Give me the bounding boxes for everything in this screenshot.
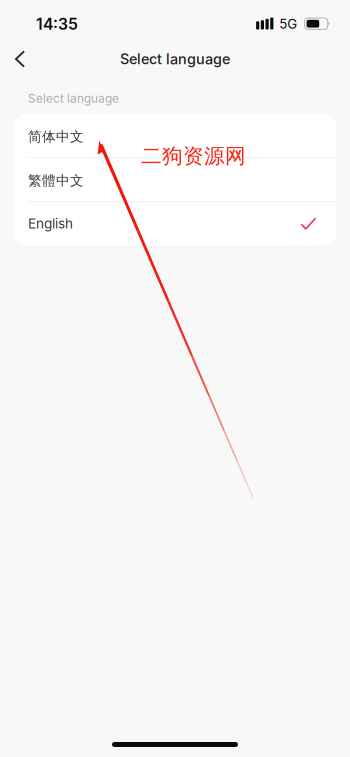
button[interactable]: 简体中文	[14, 114, 336, 157]
staticText: 5G	[279, 16, 297, 32]
button[interactable]: 繁體中文	[14, 158, 336, 201]
staticText: 二狗资源网	[141, 143, 246, 169]
staticText: English	[28, 215, 73, 232]
staticText: 简体中文	[28, 128, 84, 145]
staticText: 14:35	[36, 14, 78, 33]
button[interactable]: English	[14, 202, 336, 245]
staticText: 繁體中文	[28, 172, 84, 189]
staticText: Select language	[120, 50, 230, 68]
button[interactable]: Back	[0, 42, 40, 76]
staticText: Select language	[28, 91, 119, 106]
